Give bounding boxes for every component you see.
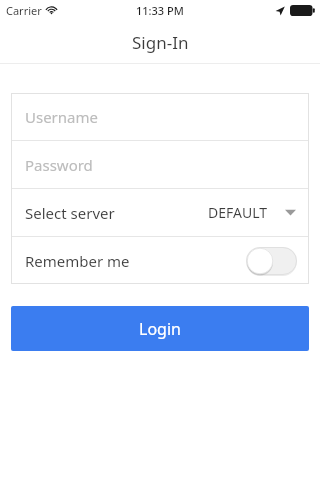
- button[interactable]: Remember me toggle: [246, 247, 297, 275]
- staticText: DEFAULT: [208, 203, 268, 222]
- button[interactable]: Password: [11, 141, 309, 188]
- button[interactable]: Remember me: [11, 237, 309, 284]
- button[interactable]: Login: [11, 306, 309, 351]
- staticText: Sign-In: [132, 31, 189, 54]
- staticText: Remember me: [25, 251, 130, 271]
- staticText: Login: [139, 318, 181, 340]
- staticText: Password: [25, 155, 93, 175]
- button[interactable]: Select server: [11, 189, 309, 236]
- button[interactable]: Username: [11, 93, 309, 140]
- staticText: Select server: [25, 203, 115, 223]
- staticText: Username: [25, 107, 98, 127]
- staticText: 11:33 PM: [136, 3, 184, 18]
- staticText: Carrier: [6, 3, 42, 18]
